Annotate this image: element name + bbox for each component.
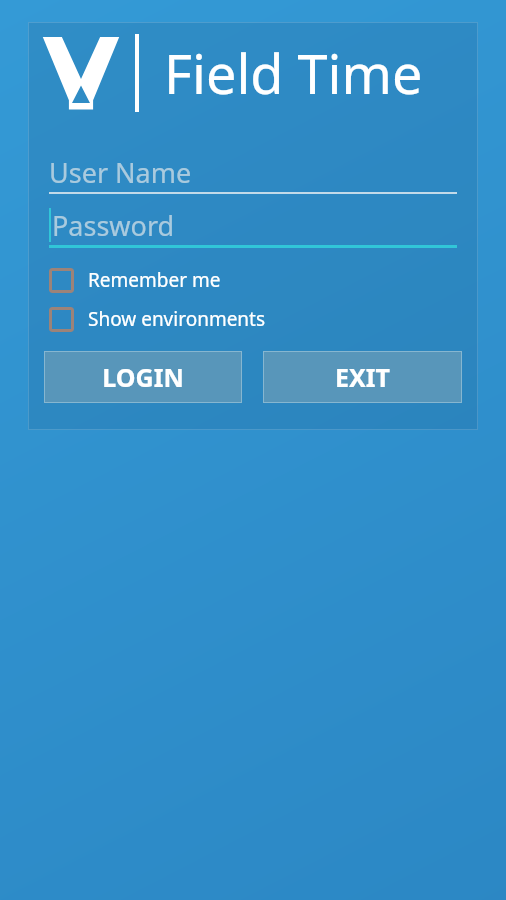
staticText: EXIT — [335, 360, 390, 394]
staticText: Field Time — [164, 36, 423, 110]
other: Vertex logo — [42, 33, 120, 113]
button[interactable]: EXIT — [263, 351, 462, 403]
button[interactable]: LOGIN — [44, 351, 242, 403]
staticText: User Name — [49, 154, 192, 191]
button[interactable]: Remember me — [49, 267, 221, 293]
staticText: LOGIN — [102, 360, 184, 394]
staticText: Remember me — [88, 267, 221, 293]
button[interactable]: Password — [49, 205, 457, 248]
staticText: Show environments — [88, 306, 266, 332]
button[interactable]: Show environments — [49, 306, 266, 332]
staticText: Password — [52, 207, 175, 244]
button[interactable]: User Name — [49, 152, 457, 194]
